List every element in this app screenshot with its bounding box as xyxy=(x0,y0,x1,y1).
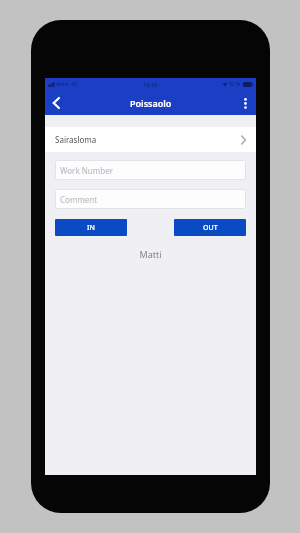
button[interactable]: Back xyxy=(45,92,67,114)
button[interactable]: OUT xyxy=(174,219,246,236)
button[interactable]: More options xyxy=(234,92,256,114)
staticText: Poissaolo xyxy=(130,97,172,109)
staticText: Sairasloma xyxy=(55,134,97,145)
staticText: 92 % xyxy=(229,81,241,88)
staticText: OUT xyxy=(203,223,218,233)
button[interactable]: IN xyxy=(55,219,127,236)
staticText: 4G xyxy=(71,81,78,88)
button[interactable]: Work Number xyxy=(55,160,246,180)
staticText: Matti xyxy=(45,248,256,260)
button[interactable]: Comment xyxy=(55,189,246,209)
staticText: IN xyxy=(87,223,95,233)
staticText: Work Number xyxy=(60,165,114,176)
staticText: 19:18 xyxy=(143,81,158,88)
button[interactable]: Sairasloma xyxy=(45,127,256,152)
staticText: Airtel xyxy=(56,81,69,88)
staticText: Comment xyxy=(60,194,98,205)
